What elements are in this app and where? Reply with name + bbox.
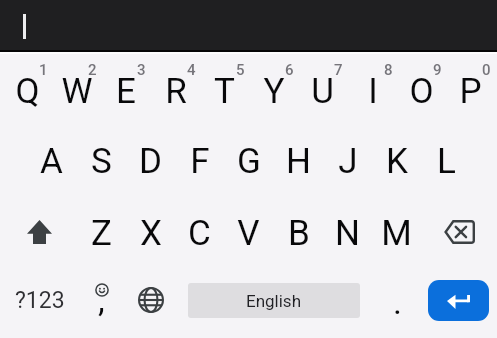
button[interactable]: W xyxy=(52,55,101,127)
staticText: N xyxy=(335,213,360,254)
staticText: K xyxy=(386,141,408,182)
staticText: T xyxy=(214,71,235,112)
button[interactable]: E xyxy=(101,55,150,127)
staticText: U xyxy=(311,71,334,112)
staticText: C xyxy=(188,213,211,254)
staticText: Z xyxy=(91,213,112,254)
button[interactable]: Change keyboard language xyxy=(126,264,175,336)
button[interactable]: D xyxy=(126,125,175,197)
staticText: 6 xyxy=(285,61,294,77)
staticText: P xyxy=(459,71,482,112)
staticText: . xyxy=(393,282,402,322)
button[interactable]: C xyxy=(175,197,224,269)
button[interactable]: Shift xyxy=(3,196,77,268)
button[interactable]: K xyxy=(372,125,421,197)
staticText: 5 xyxy=(236,61,245,77)
staticText: D xyxy=(139,141,162,182)
staticText: O xyxy=(409,71,434,112)
button[interactable]: V xyxy=(224,197,273,269)
button[interactable]: U xyxy=(298,55,347,127)
button[interactable]: A xyxy=(27,125,76,197)
staticText: 0 xyxy=(482,61,491,77)
staticText: J xyxy=(338,141,358,182)
button[interactable]: G xyxy=(224,125,273,197)
staticText: L xyxy=(437,141,456,182)
button[interactable]: Enter xyxy=(428,280,489,321)
button[interactable]: ?123 xyxy=(3,264,77,336)
button[interactable]: M xyxy=(372,197,421,269)
staticText: H xyxy=(286,141,311,182)
button[interactable]: R xyxy=(151,55,200,127)
button[interactable]: Q xyxy=(3,55,52,127)
button[interactable]: O xyxy=(397,55,446,127)
staticText: 7 xyxy=(334,61,343,77)
staticText: V xyxy=(237,213,260,254)
staticText: ?123 xyxy=(15,287,65,314)
button[interactable]: T xyxy=(200,55,249,127)
staticText: 9 xyxy=(433,61,442,77)
staticText: 1 xyxy=(39,61,48,77)
staticText: W xyxy=(61,71,93,112)
button[interactable]: I xyxy=(348,55,397,127)
staticText: I xyxy=(368,71,378,112)
staticText: S xyxy=(91,141,112,182)
staticText: E xyxy=(116,71,136,112)
button[interactable]: Y xyxy=(249,55,298,127)
staticText: A xyxy=(40,141,63,182)
staticText: 2 xyxy=(88,61,97,77)
staticText: 8 xyxy=(384,61,393,77)
button[interactable]: H xyxy=(274,125,323,197)
staticText: 3 xyxy=(137,61,146,77)
staticText: 4 xyxy=(187,61,196,77)
button[interactable]: F xyxy=(175,125,224,197)
button[interactable]: English xyxy=(188,283,360,318)
staticText: Y xyxy=(263,71,285,112)
button[interactable]: X xyxy=(126,197,175,269)
button[interactable]: B xyxy=(274,197,323,269)
button[interactable]: . xyxy=(372,264,421,336)
staticText: , xyxy=(98,280,105,320)
button[interactable]: Backspace xyxy=(422,196,496,268)
staticText: X xyxy=(140,213,162,254)
staticText: B xyxy=(288,213,310,254)
staticText: R xyxy=(165,71,187,112)
staticText: Q xyxy=(15,71,40,112)
button[interactable]: P xyxy=(446,55,495,127)
button[interactable]: Comma, emoji xyxy=(77,264,126,336)
staticText: G xyxy=(237,141,261,182)
staticText: F xyxy=(190,141,210,182)
button[interactable]: Z xyxy=(77,197,126,269)
staticText: M xyxy=(381,213,412,254)
button[interactable]: J xyxy=(323,125,372,197)
button[interactable]: N xyxy=(323,197,372,269)
button[interactable]: L xyxy=(422,125,471,197)
staticText: English xyxy=(246,291,302,311)
button[interactable]: S xyxy=(77,125,126,197)
